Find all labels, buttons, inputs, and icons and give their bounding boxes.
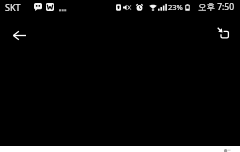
button[interactable]: Back <box>5 21 33 49</box>
button[interactable]: Picture in picture <box>209 19 237 47</box>
staticText: 오후 7:50 <box>198 1 235 13</box>
staticText: 23% <box>168 2 183 12</box>
staticText: SKT <box>5 1 21 13</box>
